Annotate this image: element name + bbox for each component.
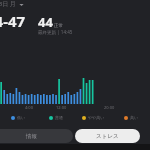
staticText: 24-47	[0, 11, 26, 31]
staticText: 普通	[55, 115, 63, 120]
staticText: 44	[38, 13, 53, 31]
staticText: ストレス	[96, 133, 119, 140]
staticText: やや高い	[88, 115, 105, 120]
button[interactable]: 11月3日 月	[0, 0, 24, 8]
button[interactable]: 高い	[112, 115, 150, 120]
staticText: 情報	[26, 133, 37, 140]
staticText: 低い	[17, 115, 26, 120]
button[interactable]: やや高い	[74, 115, 112, 120]
button[interactable]: 普通	[37, 115, 74, 120]
staticText: 11月3日 月	[0, 0, 16, 8]
staticText: 高い	[130, 115, 139, 120]
staticText: 20:00	[104, 105, 115, 110]
staticText: 4:00	[25, 105, 33, 110]
staticText: 正常	[54, 23, 63, 29]
staticText: 最終更新 | 14:45	[38, 29, 73, 35]
other: Select date	[19, 2, 24, 7]
button[interactable]: ストレス	[75, 129, 140, 143]
button[interactable]: 情報	[0, 129, 73, 143]
staticText: 12:00	[56, 105, 67, 110]
button[interactable]: 低い	[0, 115, 37, 120]
